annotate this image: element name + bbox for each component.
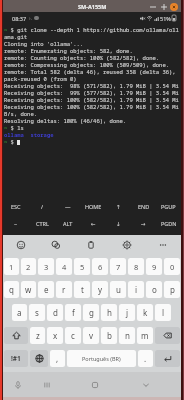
staticText: 8	[134, 262, 139, 272]
staticText: PGUP	[161, 203, 176, 210]
button[interactable]: ,	[50, 350, 65, 367]
button[interactable]: 6	[92, 258, 108, 275]
staticText: —	[65, 203, 71, 210]
button[interactable]: i	[128, 281, 144, 298]
button[interactable]: t	[74, 281, 90, 298]
staticText: Receiving objects: 98% (571/582), 1.79 M…	[4, 82, 179, 89]
staticText: ESC	[11, 203, 21, 210]
staticText: v	[89, 330, 94, 341]
staticText: ollama storage	[4, 131, 54, 138]
button[interactable]: ~	[3, 215, 29, 232]
button[interactable]: ↓	[106, 215, 131, 232]
button[interactable]: Change language	[30, 350, 48, 367]
button[interactable]: 5	[74, 258, 90, 275]
button[interactable]: —	[55, 198, 81, 215]
button[interactable]: f	[65, 304, 81, 321]
staticText: 08:37	[12, 15, 27, 22]
button[interactable]: m	[137, 327, 153, 344]
button[interactable]: w	[21, 281, 36, 298]
button[interactable]: Settings	[109, 235, 145, 255]
staticText: l	[162, 307, 165, 318]
staticText: /	[41, 203, 44, 210]
button[interactable]: e	[38, 281, 54, 298]
button[interactable]: Shift	[4, 327, 28, 344]
button[interactable]: u	[110, 281, 126, 298]
button[interactable]: 7	[110, 258, 126, 275]
button[interactable]: 2	[21, 258, 36, 275]
staticText: Resolving deltas: 100% (46/46), done.	[4, 117, 127, 124]
button[interactable]: b	[101, 327, 117, 344]
button[interactable]: l	[155, 304, 171, 321]
button[interactable]: o	[146, 281, 162, 298]
staticText: s	[35, 307, 39, 318]
button[interactable]: r	[56, 281, 72, 298]
button[interactable]: Voice input	[5, 372, 31, 397]
button[interactable]: k	[137, 304, 153, 321]
button[interactable]: d	[47, 304, 63, 321]
staticText: i	[135, 284, 138, 295]
button[interactable]: 3	[38, 258, 54, 275]
button[interactable]: Hide keyboard	[133, 372, 159, 397]
staticText: 9	[152, 262, 157, 272]
button[interactable]: PGUP	[156, 198, 181, 215]
button[interactable]: More options	[145, 235, 181, 255]
button[interactable]: x	[47, 327, 63, 344]
button[interactable]: ↑	[106, 198, 131, 215]
button[interactable]: →	[131, 215, 156, 232]
button[interactable]: Recents	[34, 372, 60, 397]
button[interactable]: a	[12, 304, 27, 321]
button[interactable]: y	[92, 281, 108, 298]
button[interactable]: CTRL	[29, 215, 55, 232]
button[interactable]: END	[131, 198, 156, 215]
button[interactable]: j	[119, 304, 135, 321]
button[interactable]: v	[83, 327, 99, 344]
button[interactable]: g	[83, 304, 99, 321]
staticText: Cloning into 'ollama'...	[4, 40, 84, 47]
staticText: HOME	[85, 203, 102, 210]
button[interactable]: /	[29, 198, 55, 215]
button[interactable]: s	[29, 304, 45, 321]
button[interactable]: ALT	[55, 215, 81, 232]
button[interactable]: Home	[82, 372, 108, 397]
button[interactable]: ←	[81, 215, 106, 232]
staticText: 4	[62, 262, 67, 272]
staticText: 1	[9, 262, 14, 272]
button[interactable]: q	[4, 281, 19, 298]
staticText: ~ $ git clone --depth 1 https://github.c…	[4, 26, 179, 33]
button[interactable]: Maximize	[159, 2, 168, 11]
button[interactable]: Backspace	[155, 327, 180, 344]
button[interactable]: Emoji	[3, 235, 38, 255]
button[interactable]: 9	[146, 258, 162, 275]
button[interactable]: 1	[4, 258, 19, 275]
button[interactable]: Português (BR)	[67, 350, 136, 367]
staticText: e	[44, 284, 49, 295]
button[interactable]: 8	[128, 258, 144, 275]
button[interactable]: .	[138, 350, 153, 367]
button[interactable]: 4	[56, 258, 72, 275]
button[interactable]: Minimize	[148, 2, 157, 11]
button[interactable]: HOME	[81, 198, 106, 215]
staticText: d	[53, 307, 58, 318]
staticText: q	[9, 284, 14, 295]
button[interactable]: z	[30, 327, 45, 344]
button[interactable]: h	[101, 304, 117, 321]
button[interactable]: Stickers	[38, 235, 73, 255]
button[interactable]: PGDN	[156, 215, 181, 232]
staticText: remote: Enumerating objects: 582, done.	[4, 47, 133, 54]
button[interactable]: n	[119, 327, 135, 344]
staticText: m	[141, 330, 149, 341]
button[interactable]: Clipboard	[73, 235, 109, 255]
button[interactable]: !#1	[4, 350, 28, 367]
staticText: ›.	[29, 15, 32, 22]
button[interactable]: c	[65, 327, 81, 344]
staticText: b	[107, 330, 112, 341]
staticText: ~	[14, 220, 18, 227]
button[interactable]: Enter	[155, 350, 180, 367]
button[interactable]: Close	[170, 3, 178, 11]
staticText: remote: Compressing objects: 100% (509/5…	[4, 61, 170, 68]
button[interactable]: ESC	[3, 198, 29, 215]
staticText: 5	[80, 262, 85, 272]
button[interactable]: p	[164, 281, 180, 298]
staticText: Receiving objects: 99% (577/582), 1.79 M…	[4, 89, 179, 96]
button[interactable]: 0	[164, 258, 180, 275]
